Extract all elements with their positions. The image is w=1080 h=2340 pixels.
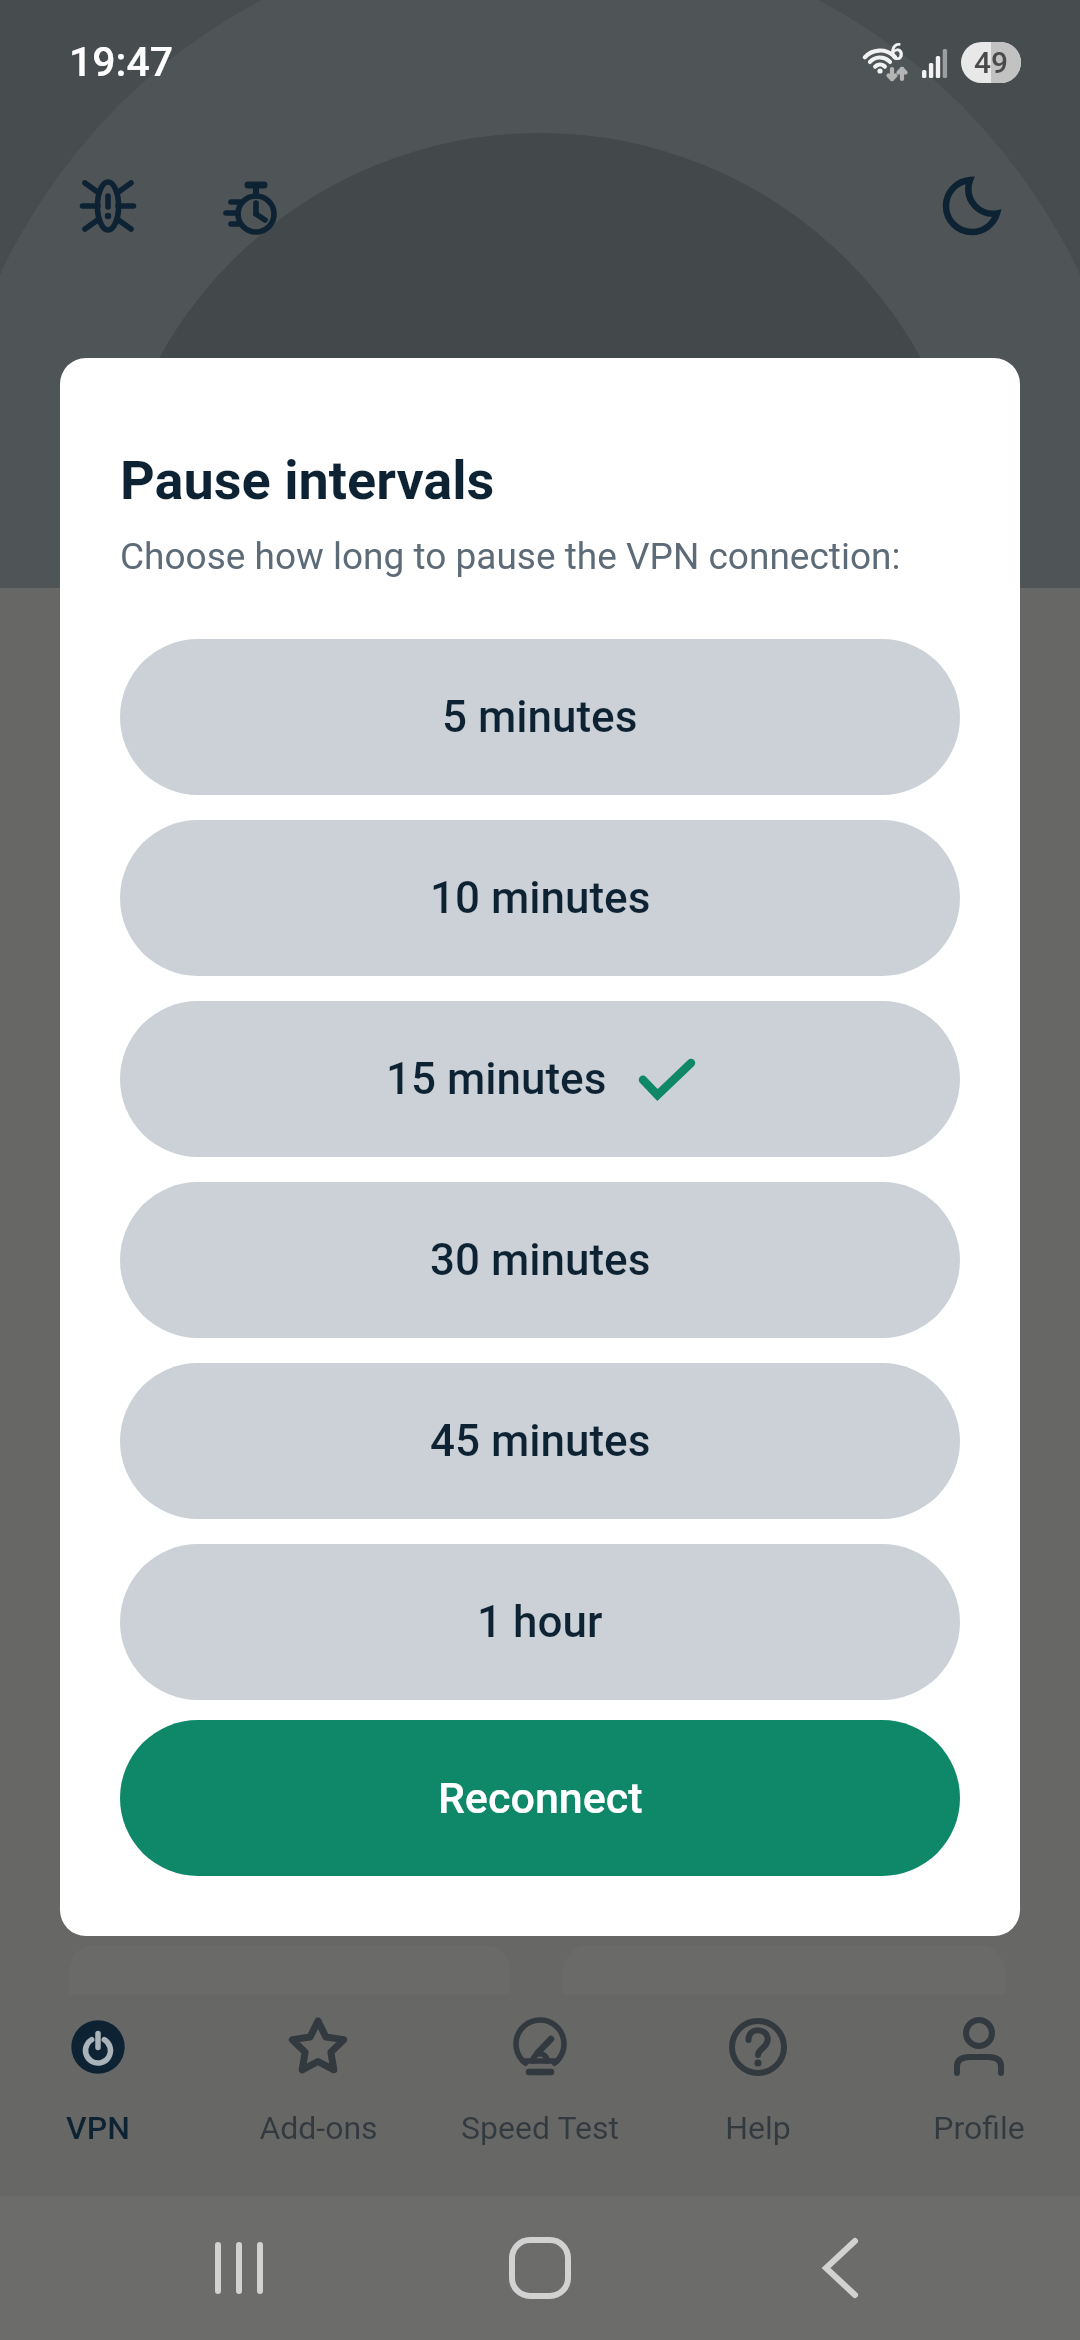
staticText: 1 hour	[477, 1596, 603, 1648]
button[interactable]: 1 hour	[120, 1544, 960, 1700]
staticText: 45 minutes	[430, 1415, 651, 1467]
button[interactable]: Speed Test	[432, 1996, 648, 2172]
staticText: Reconnect	[438, 1773, 643, 1823]
button[interactable]: Dark mode	[924, 158, 1020, 254]
staticText: Speed Test	[461, 2109, 619, 2147]
staticText: Profile	[933, 2109, 1025, 2147]
button[interactable]: 45 minutes	[120, 1363, 960, 1519]
button[interactable]: 15 minutes	[120, 1001, 960, 1157]
staticText: Choose how long to pause the VPN connect…	[120, 535, 901, 578]
button[interactable]: Pause timer	[210, 158, 306, 254]
staticText: 49	[974, 45, 1009, 80]
staticText: 5 minutes	[442, 691, 638, 743]
staticText: Pause intervals	[120, 449, 495, 512]
staticText: 6	[890, 38, 904, 66]
button[interactable]: 10 minutes	[120, 820, 960, 976]
button[interactable]: Add-ons	[210, 1996, 426, 2172]
staticText: Add-ons	[259, 2109, 378, 2147]
button[interactable]: VPN	[0, 1996, 206, 2172]
staticText: 19:47	[69, 38, 174, 86]
button[interactable]: 5 minutes	[120, 639, 960, 795]
staticText: 10 minutes	[430, 872, 651, 924]
button[interactable]: Reconnect	[120, 1720, 960, 1876]
staticText: VPN	[66, 2109, 130, 2147]
button[interactable]: 30 minutes	[120, 1182, 960, 1338]
staticText: Help	[725, 2109, 791, 2147]
staticText: 30 minutes	[430, 1234, 651, 1286]
button[interactable]: Help	[650, 1996, 866, 2172]
staticText: 15 minutes	[386, 1053, 607, 1105]
button[interactable]: Profile	[871, 1996, 1080, 2172]
button[interactable]: Report a bug	[60, 158, 156, 254]
